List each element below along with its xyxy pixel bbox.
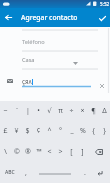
button[interactable]: }: [99, 121, 110, 141]
staticText: Teléfono: [22, 38, 45, 46]
button[interactable]: ¢: [33, 121, 44, 141]
button[interactable]: ABC: [0, 162, 20, 183]
staticText: •: [37, 106, 40, 116]
staticText: $: [25, 126, 30, 136]
button[interactable]: Back: [0, 8, 17, 27]
button[interactable]: ÷: [66, 101, 77, 121]
button[interactable]: .: [79, 162, 90, 183]
button[interactable]: π: [55, 101, 66, 121]
staticText: Δ: [102, 106, 107, 116]
staticText: }: [103, 126, 106, 136]
button[interactable]: °: [55, 121, 66, 141]
staticText: ABC: [5, 169, 15, 176]
staticText: |: [26, 106, 30, 116]
staticText: Agregar contacto: [21, 13, 78, 22]
button[interactable]: Backspace: [88, 141, 110, 162]
staticText: {: [92, 126, 95, 136]
button[interactable]: $: [22, 121, 33, 141]
button[interactable]: `: [11, 101, 22, 121]
button[interactable]: √: [44, 101, 55, 121]
button[interactable]: ©: [11, 141, 22, 162]
button[interactable]: ®: [22, 141, 33, 162]
button[interactable]: ^: [44, 121, 55, 141]
staticText: ©: [14, 147, 20, 157]
staticText: .: [84, 168, 86, 178]
staticText: ®: [25, 147, 31, 157]
staticText: ™: [36, 147, 42, 157]
button[interactable]: Enter: [90, 162, 110, 183]
staticText: ~: [3, 106, 8, 116]
button[interactable]: %: [77, 121, 88, 141]
button[interactable]: Clear text: [96, 80, 108, 92]
staticText: ]: [81, 147, 84, 157]
button[interactable]: Save contact: [94, 8, 110, 27]
staticText: ¶: [91, 106, 96, 116]
button[interactable]: Space: [31, 162, 79, 183]
staticText: [: [70, 147, 73, 157]
button[interactable]: £: [0, 121, 11, 141]
button[interactable]: Casa: [22, 55, 83, 65]
button[interactable]: ™: [33, 141, 44, 162]
staticText: Casa: [22, 56, 35, 64]
staticText: ÷: [69, 106, 74, 116]
button[interactable]: <: [44, 141, 55, 162]
staticText: 5:52: [100, 1, 110, 7]
staticText: `: [16, 106, 18, 116]
staticText: ×: [80, 106, 85, 116]
staticText: £: [3, 126, 8, 136]
button[interactable]: >: [55, 141, 66, 162]
staticText: ,: [25, 168, 27, 178]
button[interactable]: {: [88, 121, 99, 141]
button[interactable]: _: [66, 121, 77, 141]
staticText: ^: [47, 126, 52, 136]
button[interactable]: ¥: [11, 121, 22, 141]
button[interactable]: Teléfono: [22, 37, 99, 46]
button[interactable]: ×: [77, 101, 88, 121]
button[interactable]: ]: [77, 141, 88, 162]
staticText: π: [58, 106, 63, 116]
button[interactable]: çᴙᴧ: [22, 76, 88, 86]
button[interactable]: ~: [0, 101, 11, 121]
button[interactable]: Δ: [99, 101, 110, 121]
staticText: °: [59, 126, 62, 136]
staticText: >: [58, 147, 63, 157]
staticText: %: [80, 126, 86, 136]
staticText: ¢: [36, 126, 41, 136]
button[interactable]: [: [66, 141, 77, 162]
staticText: <: [47, 147, 52, 157]
button[interactable]: •: [33, 101, 44, 121]
staticText: _: [70, 126, 74, 136]
button[interactable]: |: [22, 101, 33, 121]
button[interactable]: ¶: [88, 101, 99, 121]
button[interactable]: \: [0, 141, 11, 162]
button[interactable]: ,: [20, 162, 31, 183]
staticText: ¥: [14, 126, 19, 136]
staticText: çᴙᴧ: [22, 77, 32, 86]
staticText: √: [47, 107, 52, 115]
staticText: \: [4, 147, 7, 157]
